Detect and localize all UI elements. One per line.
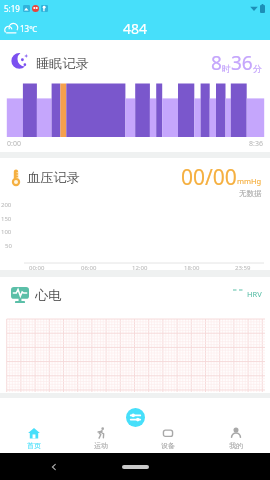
staticText: 06:00 bbox=[81, 264, 97, 270]
button[interactable]: Home bbox=[122, 465, 149, 469]
staticText: 运动 bbox=[94, 441, 108, 450]
button[interactable]: Back bbox=[50, 463, 58, 471]
button[interactable]: 睡眠记录 bbox=[0, 40, 270, 152]
staticText: 36 bbox=[231, 50, 253, 76]
staticText: 23:59 bbox=[235, 264, 251, 270]
staticText: 心电 bbox=[35, 287, 62, 304]
staticText: 13℃ bbox=[20, 23, 38, 34]
staticText: 首页 bbox=[27, 441, 41, 450]
button[interactable]: 心电 bbox=[0, 277, 270, 393]
button[interactable]: Weather bbox=[4, 21, 38, 36]
staticText: 00:00 bbox=[29, 264, 45, 270]
staticText: 150 bbox=[1, 215, 12, 223]
staticText: 12:00 bbox=[132, 264, 148, 270]
staticText: 睡眠记录 bbox=[36, 55, 89, 72]
staticText: 50 bbox=[5, 242, 12, 250]
staticText: 0:00 bbox=[7, 139, 21, 149]
staticText: 无数据 bbox=[239, 189, 262, 198]
staticText: 分 bbox=[253, 63, 262, 74]
staticText: 18:00 bbox=[184, 264, 200, 270]
staticText: 100 bbox=[1, 228, 12, 236]
button[interactable]: 我的 bbox=[202, 427, 270, 450]
staticText: 8 bbox=[211, 50, 222, 76]
staticText: 200 bbox=[1, 201, 12, 209]
staticText: HRV bbox=[247, 289, 262, 299]
staticText: 血压记录 bbox=[27, 169, 80, 186]
staticText: mmHg bbox=[237, 176, 262, 186]
staticText: 5:19 bbox=[4, 3, 20, 14]
staticText: 设备 bbox=[161, 441, 175, 450]
button[interactable]: Quick actions bbox=[126, 408, 145, 427]
button[interactable]: 首页 bbox=[0, 427, 67, 450]
staticText: 我的 bbox=[229, 441, 243, 450]
staticText: 8:36 bbox=[249, 139, 263, 149]
button[interactable]: 运动 bbox=[67, 427, 134, 450]
staticText: 时 bbox=[222, 63, 231, 74]
staticText: 00/00 bbox=[181, 163, 237, 192]
button[interactable]: 设备 bbox=[134, 427, 202, 450]
other: HRV legend bbox=[233, 288, 245, 292]
other: Weather bbox=[4, 21, 19, 36]
staticText: 484 bbox=[123, 19, 148, 38]
button[interactable]: 血压记录 bbox=[0, 158, 270, 270]
